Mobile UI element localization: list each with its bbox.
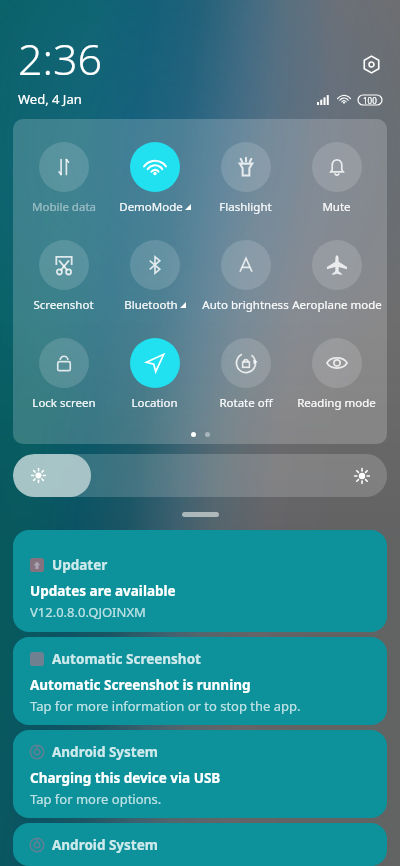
staticText: Auto brightness [202, 297, 289, 313]
button[interactable]: Mobile data [18, 142, 109, 215]
staticText: Reading mode [297, 395, 376, 411]
staticText: Charging this device via USB [30, 769, 221, 787]
button[interactable]: DemoMode [109, 142, 200, 215]
staticText: Updates are available [30, 582, 176, 600]
staticText: V12.0.8.0.QJOINXM [30, 603, 146, 621]
staticText: Mobile data [32, 199, 96, 215]
button[interactable]: Reading mode [291, 338, 382, 411]
button[interactable]: Android System [13, 730, 387, 818]
staticText: Lock screen [32, 395, 96, 411]
staticText: Wed, 4 Jan [18, 90, 82, 108]
button[interactable]: Aeroplane mode [291, 240, 382, 313]
button[interactable]: Flashlight [200, 142, 291, 215]
button[interactable]: Location [109, 338, 200, 411]
staticText: Tap for more options. [30, 790, 162, 808]
button[interactable]: Android System [13, 823, 387, 866]
staticText: Tap for more information or to stop the … [30, 697, 301, 715]
button[interactable] [13, 454, 387, 497]
staticText: Android System [52, 836, 158, 854]
button[interactable]: Automatic Screenshot [13, 637, 387, 725]
staticText: 100 [363, 95, 377, 105]
button[interactable]: Settings [362, 55, 381, 74]
staticText: Updater [52, 556, 108, 574]
staticText: Screenshot [33, 297, 94, 313]
button[interactable]: Screenshot [18, 240, 109, 313]
staticText: 2:36 [18, 29, 103, 88]
button[interactable]: Lock screen [18, 338, 109, 411]
staticText: DemoMode [119, 199, 183, 215]
button[interactable]: Updater [13, 530, 387, 632]
staticText: Automatic Screenshot [52, 650, 201, 668]
button[interactable]: Mute [291, 142, 382, 215]
button[interactable]: Bluetooth [109, 240, 200, 313]
staticText: Location [131, 395, 178, 411]
staticText: Rotate off [219, 395, 273, 411]
staticText: Mute [322, 199, 351, 215]
staticText: Android System [52, 743, 158, 761]
staticText: Flashlight [219, 199, 272, 215]
staticText: Aeroplane mode [292, 297, 382, 313]
staticText: Bluetooth [124, 297, 178, 313]
button[interactable]: Rotate off [200, 338, 291, 411]
staticText: Automatic Screenshot is running [30, 676, 251, 694]
button[interactable]: Auto brightness [200, 240, 291, 313]
